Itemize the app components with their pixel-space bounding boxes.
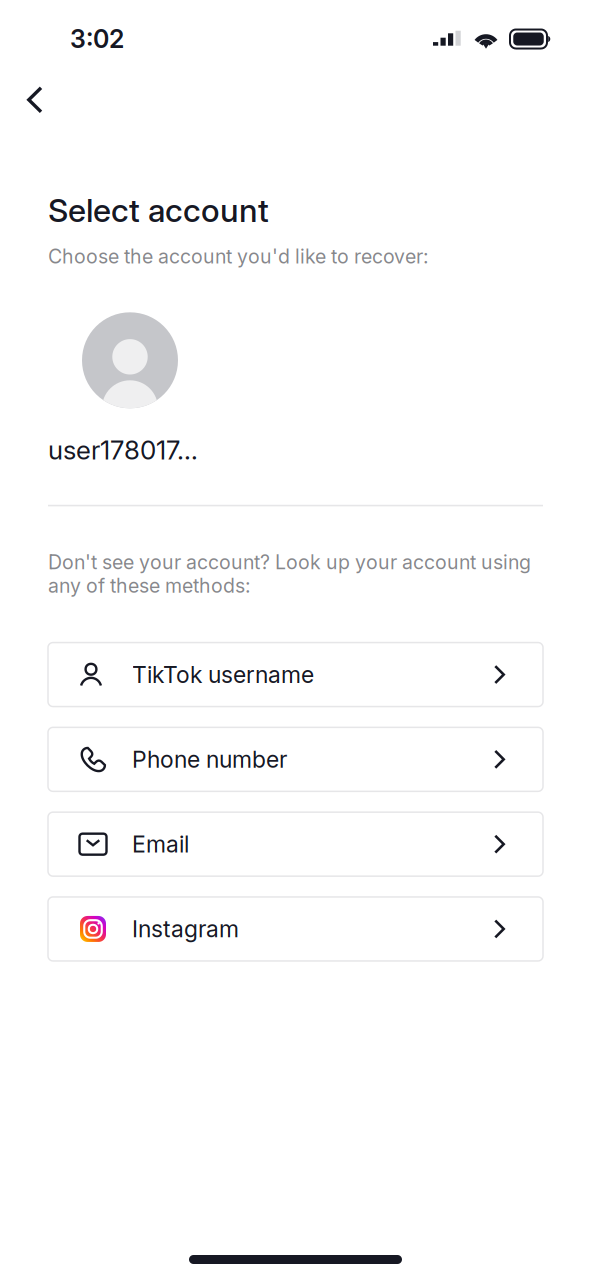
staticText: Email — [132, 830, 189, 858]
button[interactable]: TikTok username — [48, 643, 543, 707]
staticText: TikTok username — [132, 661, 314, 688]
staticText: Choose the account you'd like to recover… — [48, 245, 429, 268]
button[interactable]: user178017… — [0, 312, 591, 466]
button[interactable]: Phone number — [48, 727, 543, 791]
staticText: Instagram — [132, 915, 239, 943]
staticText: Phone number — [132, 745, 287, 773]
button[interactable]: Instagram — [48, 897, 543, 961]
staticText: user178017… — [48, 434, 198, 466]
staticText: Don't see your account? Look up your acc… — [48, 550, 531, 598]
button[interactable]: Email — [48, 812, 543, 876]
staticText: Select account — [48, 191, 269, 230]
staticText: 3:02 — [70, 24, 124, 54]
button[interactable]: Back — [0, 73, 59, 127]
